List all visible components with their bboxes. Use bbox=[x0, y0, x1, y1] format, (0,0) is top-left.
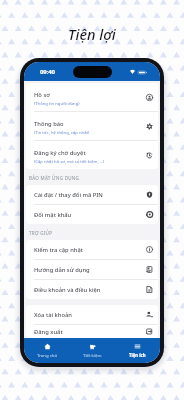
staticText: (Tin tức, hệ thống, cập nhật) bbox=[34, 130, 90, 136]
staticText: (Thông tin người dùng) bbox=[34, 101, 80, 107]
other: Updates bbox=[146, 246, 153, 253]
staticText: Hồ sơ bbox=[34, 91, 50, 99]
staticText: Đăng ký chờ duyệt bbox=[34, 149, 86, 157]
button[interactable]: Hướng dẫn sử dụng bbox=[26, 260, 158, 279]
button[interactable]: Điều khoản và điều kiện bbox=[26, 280, 158, 299]
staticText: 09:40 bbox=[40, 68, 55, 76]
button[interactable]: Hồ sơ bbox=[26, 83, 158, 111]
button[interactable]: Đổi mật khẩu bbox=[26, 205, 158, 224]
other: Password bbox=[146, 211, 153, 218]
staticText: Đăng xuất bbox=[34, 328, 146, 336]
other: PIN bbox=[146, 191, 153, 198]
staticText: Tiện ích bbox=[129, 352, 146, 358]
staticText: Xóa tài khoản bbox=[34, 311, 146, 319]
other: Notifications bbox=[146, 123, 153, 130]
staticText: Kiểm tra cập nhật bbox=[34, 246, 146, 254]
staticText: Tiết kiệm bbox=[83, 352, 102, 358]
staticText: (Cập nhật hồ sơ, mở sổ tiết kiệm, ...) bbox=[34, 159, 105, 165]
staticText: Thông báo bbox=[34, 120, 64, 128]
staticText: Cài đặt / thay đổi mã PIN bbox=[34, 191, 146, 199]
button[interactable]: Kiểm tra cập nhật bbox=[26, 240, 158, 259]
other: Terms bbox=[146, 286, 153, 293]
staticText: Trang chủ bbox=[37, 352, 58, 358]
other: Pending bbox=[146, 152, 153, 159]
staticText: Tiện lợi bbox=[68, 24, 116, 44]
staticText: Hướng dẫn sử dụng bbox=[34, 266, 146, 274]
button[interactable]: Đăng xuất bbox=[26, 325, 158, 338]
staticText: Điều khoản và điều kiện bbox=[34, 286, 146, 294]
other: Profile bbox=[146, 94, 153, 101]
staticText: BẢO MẬT ỨNG DỤNG bbox=[29, 175, 80, 181]
button[interactable]: Tiện ích bbox=[115, 338, 160, 363]
button[interactable]: Cài đặt / thay đổi mã PIN bbox=[26, 185, 158, 204]
button[interactable]: Thông báo bbox=[26, 112, 158, 140]
staticText: Đổi mật khẩu bbox=[34, 211, 146, 219]
button[interactable]: Tiết kiệm bbox=[70, 338, 115, 363]
other: Delete account bbox=[146, 311, 153, 318]
other: Log out bbox=[146, 328, 153, 335]
button[interactable]: Đăng ký chờ duyệt bbox=[26, 141, 158, 169]
staticText: TRỢ GIÚP bbox=[29, 230, 53, 236]
other: Guide bbox=[146, 266, 153, 273]
button[interactable]: Trang chủ bbox=[24, 338, 70, 363]
button[interactable]: Xóa tài khoản bbox=[26, 305, 158, 324]
